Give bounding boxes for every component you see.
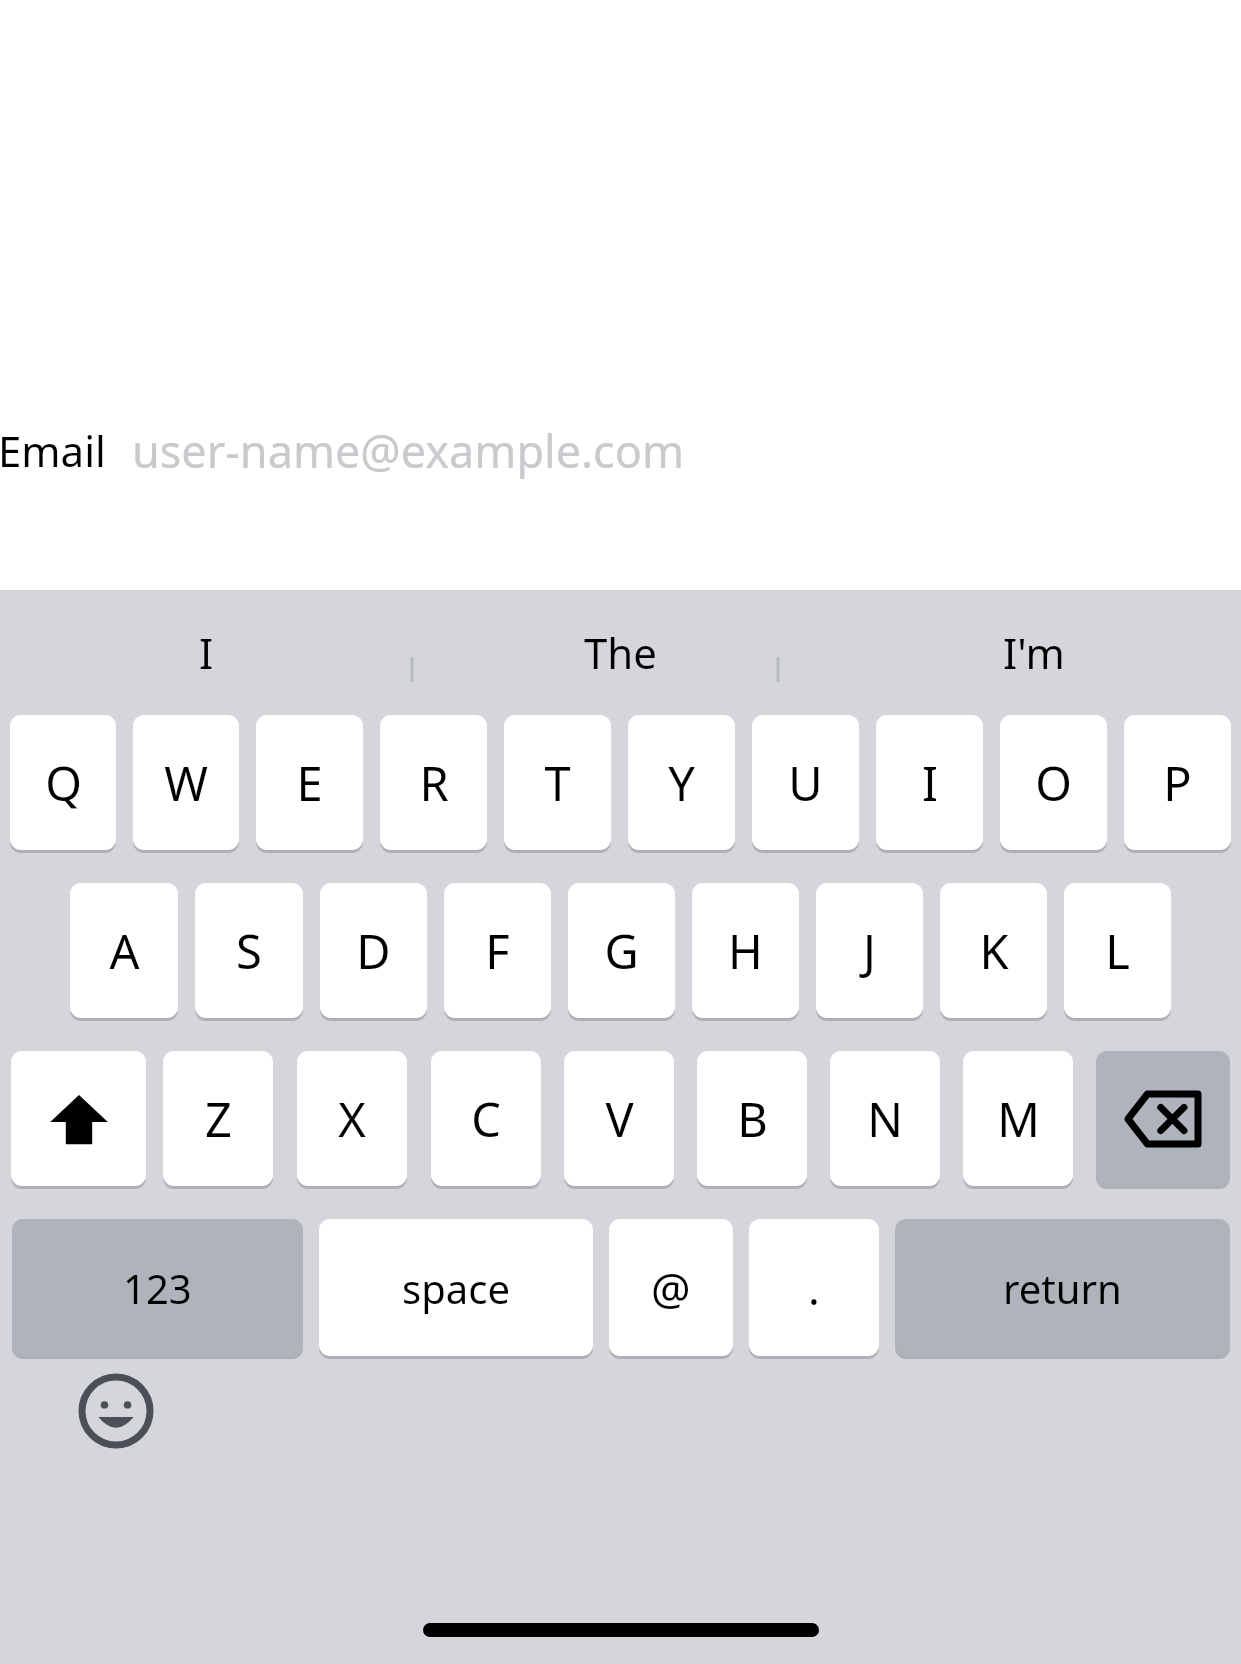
button[interactable]: Shift: [11, 1051, 146, 1186]
button[interactable]: Y: [628, 715, 735, 850]
button[interactable]: K: [940, 883, 1047, 1018]
staticText: E: [296, 751, 323, 815]
staticText: M: [997, 1087, 1040, 1151]
staticText: J: [863, 919, 876, 983]
button[interactable]: A: [70, 883, 178, 1018]
staticText: I: [922, 751, 938, 815]
button[interactable]: Backspace: [1096, 1051, 1230, 1186]
button[interactable]: N: [830, 1051, 940, 1186]
staticText: I: [199, 624, 214, 681]
staticText: P: [1163, 751, 1192, 815]
button[interactable]: I: [0, 590, 413, 715]
button[interactable]: F: [444, 883, 551, 1018]
staticText: @: [651, 1258, 691, 1318]
staticText: G: [604, 919, 639, 983]
button[interactable]: E: [256, 715, 363, 850]
button[interactable]: T: [504, 715, 611, 850]
staticText: Y: [668, 751, 695, 815]
button[interactable]: V: [564, 1051, 674, 1186]
staticText: T: [544, 751, 571, 815]
staticText: Email: [0, 422, 106, 479]
button[interactable]: L: [1064, 883, 1171, 1018]
staticText: L: [1105, 919, 1130, 983]
button[interactable]: J: [816, 883, 923, 1018]
staticText: Q: [45, 751, 82, 815]
staticText: R: [419, 751, 449, 815]
button[interactable]: B: [697, 1051, 807, 1186]
staticText: V: [605, 1087, 634, 1151]
button[interactable]: Z: [163, 1051, 273, 1186]
button[interactable]: P: [1124, 715, 1231, 850]
staticText: A: [109, 919, 140, 983]
staticText: O: [1035, 751, 1072, 815]
staticText: .: [808, 1258, 820, 1318]
button[interactable]: user-name@example.com: [132, 420, 1241, 481]
button[interactable]: 123: [12, 1219, 303, 1356]
button[interactable]: I: [876, 715, 983, 850]
staticText: F: [485, 919, 510, 983]
button[interactable]: W: [133, 715, 239, 850]
staticText: K: [979, 919, 1009, 983]
staticText: return: [1003, 1261, 1122, 1315]
staticText: user-name@example.com: [132, 420, 685, 481]
staticText: 123: [123, 1261, 192, 1315]
button[interactable]: D: [320, 883, 427, 1018]
button[interactable]: Q: [10, 715, 116, 850]
staticText: X: [338, 1087, 366, 1151]
staticText: N: [867, 1087, 903, 1151]
staticText: Z: [205, 1087, 232, 1151]
button[interactable]: space: [319, 1219, 593, 1356]
button[interactable]: return: [895, 1219, 1230, 1356]
staticText: I'm: [1003, 624, 1065, 681]
button[interactable]: M: [963, 1051, 1073, 1186]
staticText: S: [236, 919, 262, 983]
button[interactable]: R: [380, 715, 487, 850]
staticText: The: [584, 624, 657, 681]
button[interactable]: S: [195, 883, 303, 1018]
staticText: C: [471, 1087, 501, 1151]
button[interactable]: X: [297, 1051, 407, 1186]
button[interactable]: O: [1000, 715, 1107, 850]
staticText: B: [737, 1087, 768, 1151]
button[interactable]: U: [752, 715, 859, 850]
button[interactable]: @: [609, 1219, 733, 1356]
button[interactable]: Emoji: [78, 1373, 154, 1449]
button[interactable]: H: [692, 883, 799, 1018]
button[interactable]: G: [568, 883, 675, 1018]
staticText: D: [356, 919, 391, 983]
button[interactable]: .: [749, 1219, 879, 1356]
staticText: H: [728, 919, 763, 983]
button[interactable]: C: [431, 1051, 541, 1186]
button[interactable]: The: [413, 590, 827, 715]
button[interactable]: I'm: [827, 590, 1241, 715]
staticText: W: [164, 751, 208, 815]
staticText: space: [402, 1261, 510, 1315]
staticText: U: [788, 751, 823, 815]
